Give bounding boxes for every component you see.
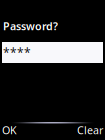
button[interactable]: OK [2, 123, 17, 137]
button[interactable]: Password [2, 42, 103, 63]
staticText: OK [2, 123, 17, 137]
staticText: **** [3, 44, 31, 60]
staticText: Clear [77, 123, 103, 137]
button[interactable]: Clear [77, 123, 103, 137]
staticText: Password? [3, 19, 58, 33]
